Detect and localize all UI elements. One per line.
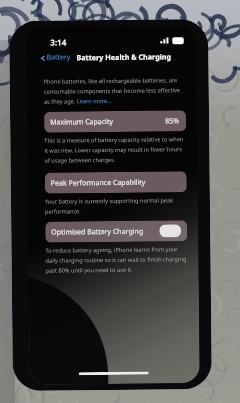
button[interactable]: Battery xyxy=(38,51,72,64)
staticText: 3:14 xyxy=(50,36,66,48)
staticText: To reduce battery ageing, iPhone learns … xyxy=(45,245,188,274)
button[interactable]: Optimised Battery Charging toggle xyxy=(159,224,181,237)
staticText: Battery Health & Charging xyxy=(76,51,171,62)
staticText: Peak Performance Capability xyxy=(51,178,146,189)
button[interactable]: Optimised Battery Charging xyxy=(45,220,187,243)
staticText: Your battery is currently supporting nor… xyxy=(45,196,187,215)
staticText: Optimised Battery Charging xyxy=(51,227,143,238)
staticText: Battery xyxy=(46,52,70,63)
staticText: This is a measure of battery capacity re… xyxy=(44,135,187,164)
staticText: 85% xyxy=(165,116,179,126)
staticText: Phone batteries, like all rechargeable b… xyxy=(44,76,186,105)
staticText: Maximum Capacity xyxy=(50,117,113,128)
button[interactable]: Peak Performance Capability xyxy=(45,171,187,194)
button[interactable]: Maximum Capacity xyxy=(44,110,186,133)
